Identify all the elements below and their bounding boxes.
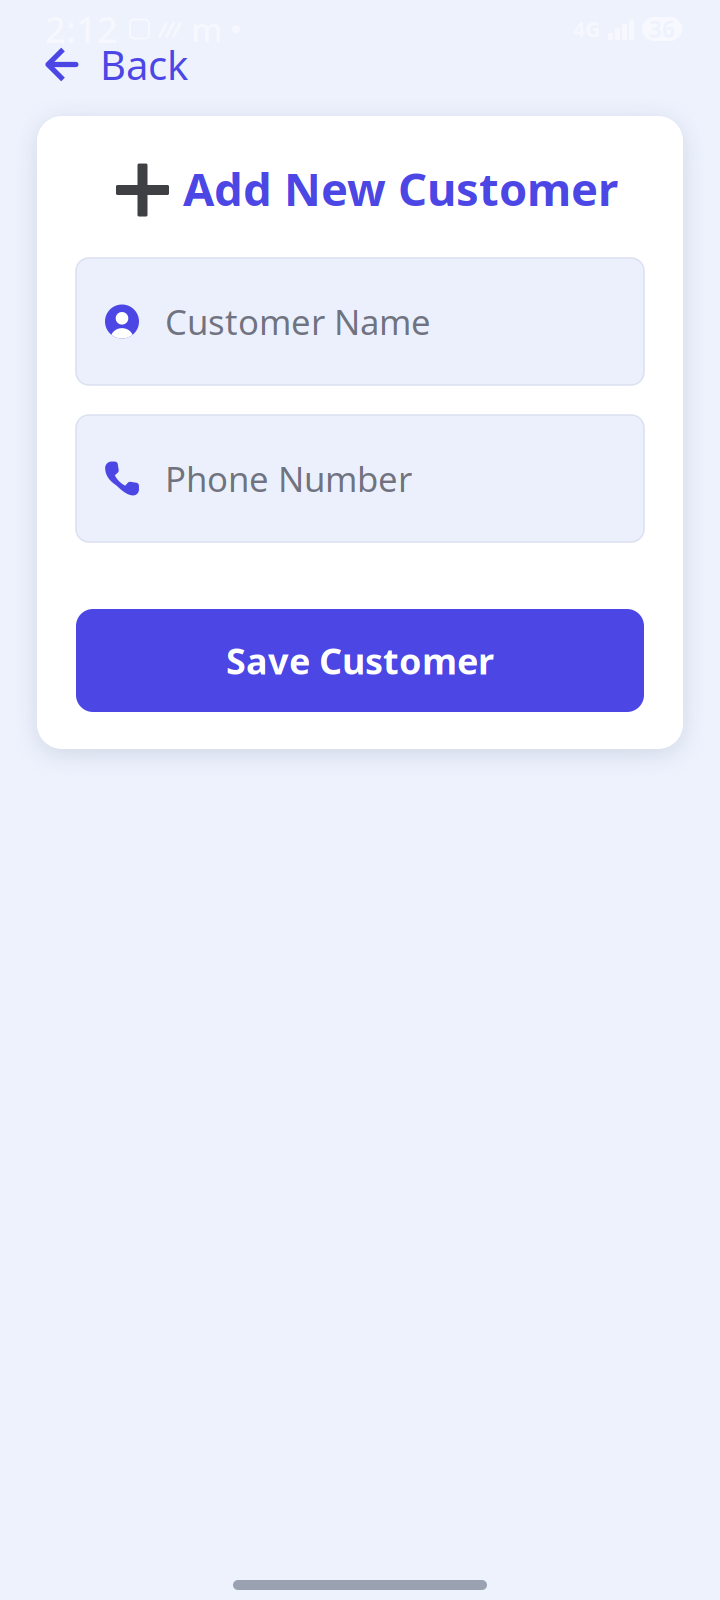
staticText: Save Customer xyxy=(226,637,494,684)
staticText: 36 xyxy=(649,14,675,44)
button[interactable]: Back xyxy=(0,44,208,85)
button[interactable]: Phone Number xyxy=(76,415,644,542)
staticText: Customer Name xyxy=(165,298,431,344)
button[interactable]: Save Customer xyxy=(76,609,644,712)
staticText: Add New Customer xyxy=(183,158,618,219)
staticText: Phone Number xyxy=(165,455,412,501)
button[interactable]: Customer Name xyxy=(76,258,644,385)
staticText: m xyxy=(191,7,223,51)
staticText: 4G xyxy=(573,15,600,43)
staticText: Back xyxy=(100,38,188,91)
staticText: 2:12 xyxy=(45,5,118,53)
